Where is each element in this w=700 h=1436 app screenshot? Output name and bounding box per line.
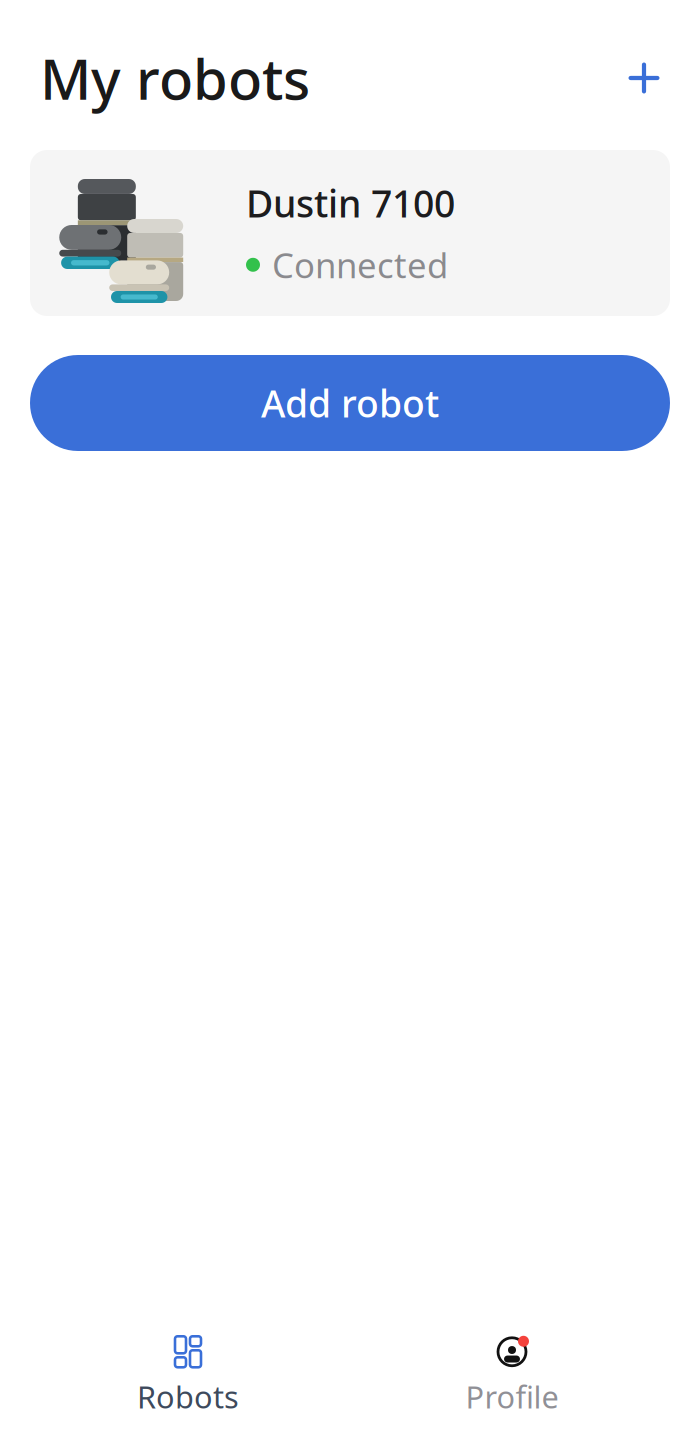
button[interactable]: Profile (350, 1330, 674, 1423)
staticText: Robots (137, 1376, 239, 1417)
staticText: Connected (272, 242, 448, 288)
button[interactable]: Add robot (617, 51, 671, 105)
button[interactable]: Add robot (30, 355, 670, 451)
staticText: Profile (465, 1376, 558, 1417)
button[interactable]: Robots (26, 1330, 350, 1423)
staticText: Add robot (261, 378, 439, 428)
staticText: Dustin 7100 (246, 178, 455, 228)
button[interactable]: Dustin 7100 (30, 150, 670, 316)
staticText: My robots (40, 41, 310, 115)
